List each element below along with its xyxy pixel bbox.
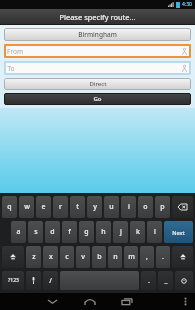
button[interactable]: key [172, 196, 193, 218]
button[interactable]: k [130, 221, 145, 243]
staticText: i [128, 202, 130, 212]
button[interactable]: p [155, 196, 170, 218]
staticText: _ [164, 276, 168, 286]
staticText: q [7, 202, 12, 212]
staticText: . [148, 276, 150, 286]
staticText: n [113, 252, 118, 262]
staticText: d [50, 227, 55, 237]
button[interactable]: e [36, 196, 51, 218]
button[interactable]: v [76, 246, 90, 268]
staticText: Birmingham [78, 30, 117, 39]
staticText: b [97, 252, 102, 262]
button[interactable]: Birmingham [4, 28, 191, 41]
button[interactable]: l [147, 221, 162, 243]
button[interactable]: . [141, 271, 156, 290]
staticText: m [128, 252, 135, 262]
staticText: From [7, 47, 23, 56]
staticText: t [76, 202, 79, 212]
button[interactable]: Go [4, 93, 191, 105]
button[interactable]: z [26, 246, 41, 268]
button[interactable]: Next [164, 221, 193, 243]
staticText: j [120, 227, 122, 237]
button[interactable]: n [108, 246, 122, 268]
button[interactable]: / [43, 271, 58, 290]
button[interactable]: t [70, 196, 85, 218]
staticText: a [16, 227, 21, 237]
staticText: v [81, 252, 85, 262]
button[interactable]: Recent apps [108, 293, 145, 310]
button[interactable]: key [26, 271, 41, 290]
staticText: Go [93, 95, 102, 103]
staticText: To [7, 64, 15, 73]
button[interactable]: d [45, 221, 60, 243]
staticText: Next [172, 229, 185, 236]
button[interactable]: f [62, 221, 77, 243]
button[interactable]: h [96, 221, 111, 243]
staticText: 4:30 [182, 1, 192, 8]
button[interactable]: s [28, 221, 43, 243]
button[interactable]: . [156, 246, 170, 268]
button[interactable]: u [104, 196, 119, 218]
button[interactable]: To [4, 61, 191, 75]
button[interactable]: key [175, 271, 193, 290]
staticText: c [65, 252, 69, 262]
button[interactable]: Home [71, 293, 108, 310]
button[interactable]: w [19, 196, 34, 218]
staticText: g [84, 227, 89, 237]
staticText: z [32, 252, 36, 262]
staticText: Direct [89, 80, 107, 88]
button[interactable]: _ [158, 271, 173, 290]
button[interactable]: o [138, 196, 153, 218]
staticText: , [146, 252, 148, 262]
staticText: u [109, 202, 114, 212]
button[interactable]: From [4, 44, 191, 58]
staticText: h [101, 227, 106, 237]
button[interactable]: i [121, 196, 136, 218]
staticText: y [93, 202, 97, 212]
staticText: p [160, 202, 165, 212]
button[interactable]: b [92, 246, 106, 268]
staticText: / [49, 276, 52, 286]
button[interactable]: c [60, 246, 74, 268]
staticText: f [68, 227, 71, 237]
button[interactable]: y [87, 196, 102, 218]
staticText: l [154, 227, 156, 237]
button[interactable]: ?123 [2, 271, 24, 290]
button[interactable]: key [172, 246, 193, 268]
button[interactable]: key [2, 246, 24, 268]
staticText: w [24, 202, 30, 212]
staticText: Please specify route... [59, 12, 136, 22]
button[interactable]: m [124, 246, 138, 268]
button[interactable]: More options [175, 293, 195, 310]
staticText: ?123 [8, 277, 19, 284]
button[interactable]: key [60, 271, 139, 290]
staticText: s [34, 227, 38, 237]
staticText: r [59, 202, 62, 212]
button[interactable]: r [53, 196, 68, 218]
staticText: x [49, 252, 53, 262]
button[interactable]: Back [34, 293, 71, 310]
button[interactable]: a [11, 221, 26, 243]
button[interactable]: , [140, 246, 154, 268]
button[interactable]: q [2, 196, 17, 218]
button[interactable]: j [113, 221, 128, 243]
staticText: o [143, 202, 148, 212]
other: Space [60, 271, 139, 290]
staticText: . [162, 252, 164, 262]
button[interactable]: Direct [4, 78, 191, 90]
staticText: e [41, 202, 46, 212]
staticText: k [136, 227, 140, 237]
button[interactable]: g [79, 221, 94, 243]
button[interactable]: x [43, 246, 58, 268]
